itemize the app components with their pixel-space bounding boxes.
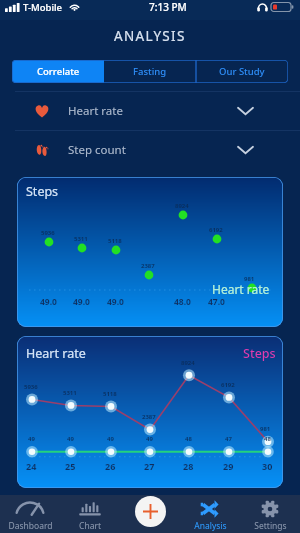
staticText: 49 <box>146 435 153 443</box>
button[interactable]: Correlate <box>12 60 104 83</box>
staticText: 49.0 <box>40 296 57 308</box>
button[interactable]: Analysis <box>180 495 240 533</box>
button[interactable]: Our Study <box>196 60 288 83</box>
staticText: 47.0 <box>208 296 225 308</box>
button[interactable]: Steps <box>17 177 283 327</box>
staticText: 981 <box>260 425 271 433</box>
staticText: 25 <box>65 460 76 472</box>
staticText: Analysis <box>194 520 227 532</box>
staticText: 27 <box>144 460 155 472</box>
button[interactable]: Add <box>135 496 166 527</box>
staticText: Step count <box>68 142 126 158</box>
staticText: 2387 <box>142 413 156 421</box>
staticText: 5311 <box>74 235 88 243</box>
staticText: T-Mobile <box>23 1 63 14</box>
button[interactable]: Heart rate <box>17 336 283 488</box>
staticText: Heart rate <box>68 103 123 119</box>
staticText: 5118 <box>103 390 117 398</box>
staticText: 29 <box>223 460 234 472</box>
staticText: 48.0 <box>174 296 191 308</box>
staticText: 28 <box>183 460 194 472</box>
button[interactable]: Fasting <box>104 60 196 83</box>
staticText: Our Study <box>219 65 265 78</box>
staticText: 24 <box>26 460 37 472</box>
staticText: Dashboard <box>8 520 53 532</box>
staticText: Correlate <box>37 65 80 78</box>
button[interactable]: Step count <box>0 131 300 169</box>
staticText: 5311 <box>63 389 77 397</box>
button[interactable]: Dashboard <box>0 495 60 533</box>
staticText: 6192 <box>209 226 223 234</box>
staticText: 5936 <box>24 383 38 391</box>
staticText: Steps <box>26 183 59 200</box>
staticText: Fasting <box>133 65 167 78</box>
button[interactable]: Chart <box>60 495 120 533</box>
staticText: 49 <box>67 435 74 443</box>
staticText: 7:13 PM <box>149 0 187 14</box>
staticText: 5118 <box>108 237 122 245</box>
staticText: 49 <box>107 435 114 443</box>
button[interactable]: Heart rate <box>0 92 300 130</box>
staticText: Steps <box>243 345 276 362</box>
staticText: ANALYSIS <box>114 27 186 45</box>
staticText: 47 <box>225 435 232 443</box>
staticText: 49.0 <box>107 296 124 308</box>
staticText: 6192 <box>221 381 235 389</box>
staticText: 8924 <box>181 359 195 367</box>
staticText: 49 <box>28 435 35 443</box>
staticText: Heart rate <box>26 345 86 362</box>
staticText: 8924 <box>175 202 189 210</box>
staticText: 26 <box>105 460 116 472</box>
staticText: Heart rate <box>212 281 270 297</box>
staticText: Settings <box>254 520 287 532</box>
staticText: 30 <box>262 460 273 472</box>
staticText: 5936 <box>41 229 55 237</box>
staticText: 2387 <box>141 262 155 270</box>
button[interactable]: Settings <box>240 495 300 533</box>
staticText: 48 <box>185 435 192 443</box>
staticText: 48 <box>264 435 271 443</box>
staticText: Chart <box>79 520 101 532</box>
staticText: 981 <box>244 275 255 283</box>
staticText: 49.0 <box>73 296 90 308</box>
